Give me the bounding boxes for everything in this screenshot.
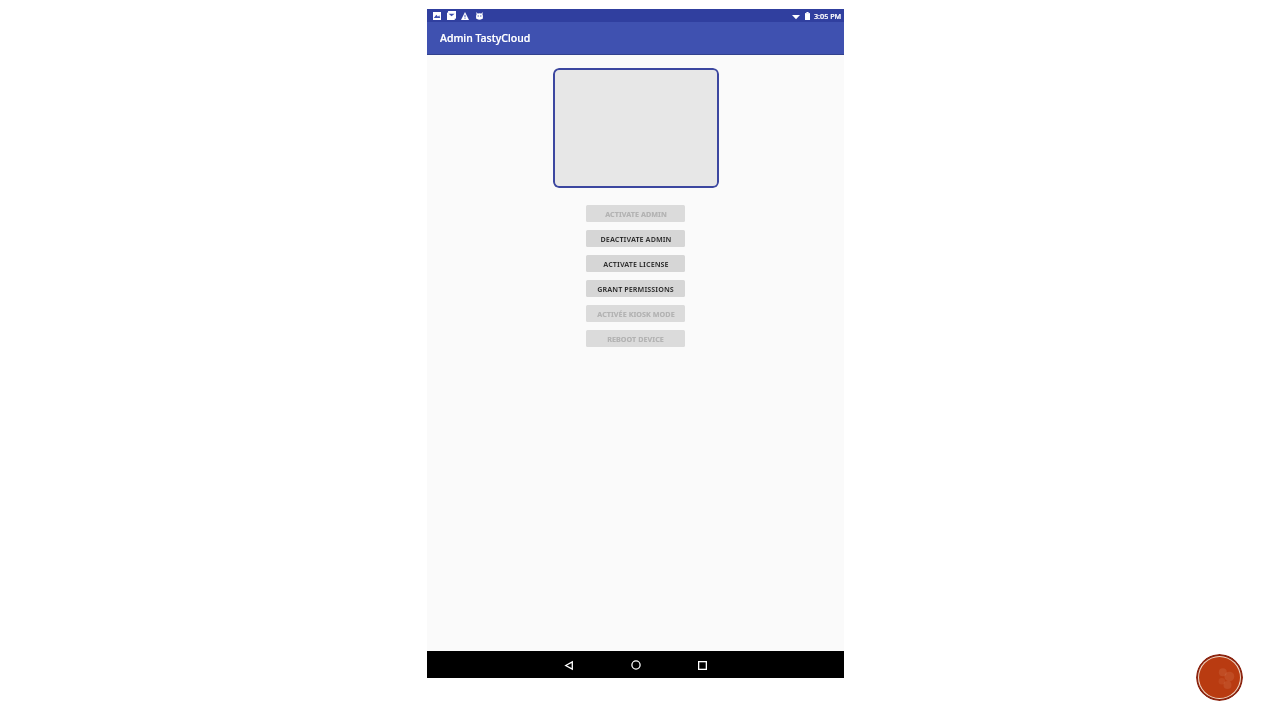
button[interactable]: GRANT PERMISSIONS [586, 280, 685, 297]
staticText: GRANT PERMISSIONS [597, 284, 674, 294]
staticText: ACTIVATE LICENSE [603, 259, 669, 269]
button[interactable]: TastyCloud app icon [1196, 654, 1243, 701]
staticText: Admin TastyCloud [440, 31, 531, 45]
button[interactable]: Back [557, 653, 581, 677]
staticText: 3:05 PM [814, 11, 842, 21]
button[interactable]: DEACTIVATE ADMIN [586, 230, 685, 247]
staticText: REBOOT DEVICE [607, 334, 664, 344]
button[interactable]: ACTIVATE ADMIN [586, 205, 685, 222]
staticText: ACTIVÉE KIOSK MODE [597, 309, 675, 319]
staticText: DEACTIVATE ADMIN [600, 234, 672, 244]
button[interactable] [553, 68, 719, 188]
button[interactable]: ACTIVATE LICENSE [586, 255, 685, 272]
button[interactable]: REBOOT DEVICE [586, 330, 685, 347]
staticText: ACTIVATE ADMIN [605, 209, 667, 219]
button[interactable]: Home [624, 653, 648, 677]
button[interactable]: ACTIVÉE KIOSK MODE [586, 305, 685, 322]
button[interactable]: Recent apps [690, 653, 714, 677]
